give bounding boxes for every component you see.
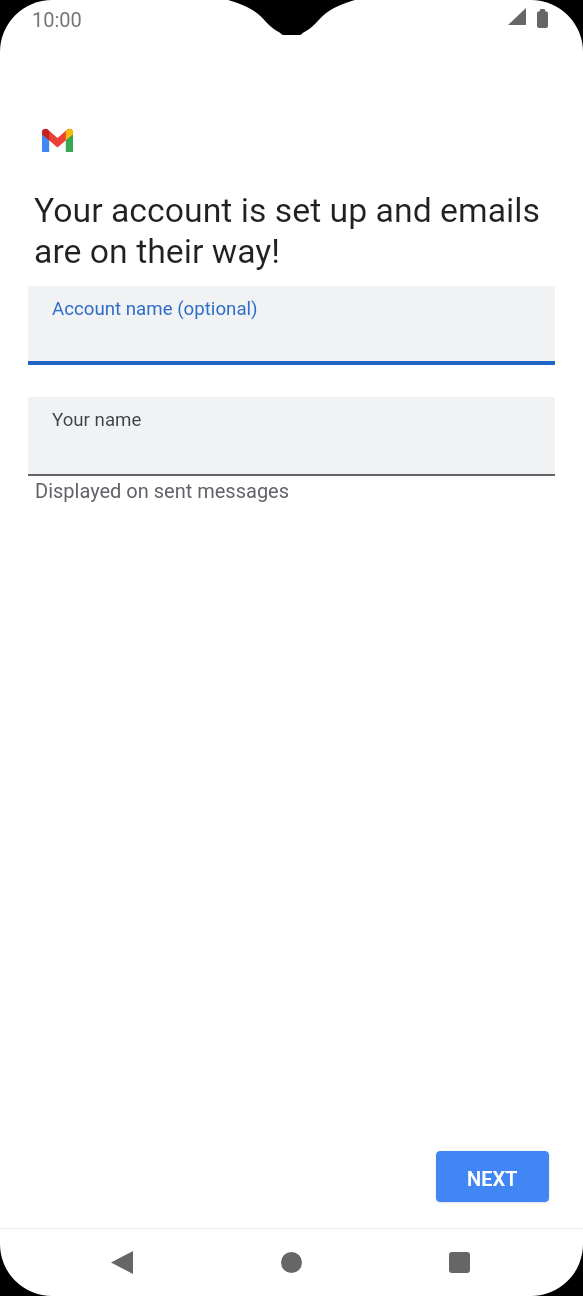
staticText: 10:00 — [32, 8, 82, 31]
staticText: Your account is set up and emails are on… — [34, 191, 558, 271]
button[interactable]: NEXT — [436, 1151, 549, 1202]
staticText: NEXT — [467, 1167, 518, 1190]
button[interactable]: Your name — [28, 397, 555, 476]
staticText: Your name — [52, 409, 142, 431]
button[interactable]: Home — [281, 1252, 302, 1273]
other: Signal strength — [508, 8, 526, 25]
staticText: Account name (optional) — [52, 298, 258, 320]
staticText: Displayed on sent messages — [35, 479, 290, 502]
other: Battery — [537, 9, 548, 28]
button[interactable]: Back — [111, 1251, 133, 1274]
button[interactable]: Account name (optional) — [28, 286, 555, 365]
button[interactable]: Recent apps — [449, 1252, 470, 1273]
